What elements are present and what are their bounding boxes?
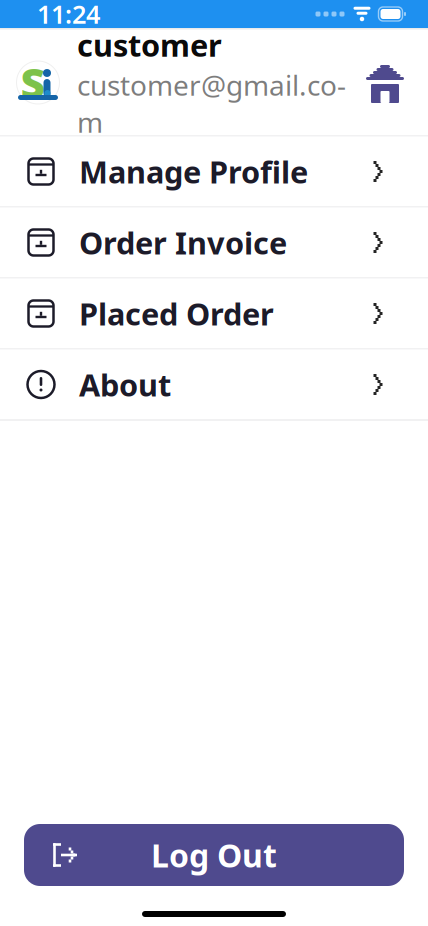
button[interactable]: About: [0, 349, 428, 419]
staticText: customer: [77, 24, 222, 65]
button[interactable]: Placed Order: [0, 278, 428, 348]
staticText: Manage Profile: [79, 151, 308, 192]
staticText: Log Out: [151, 834, 277, 876]
button[interactable]: Order Invoice: [0, 207, 428, 277]
button[interactable]: Log Out: [24, 824, 404, 886]
staticText: Placed Order: [79, 293, 274, 334]
staticText: 11:24: [37, 0, 100, 31]
button[interactable]: Manage Profile: [0, 136, 428, 206]
staticText: About: [79, 364, 171, 405]
staticText: Order Invoice: [79, 222, 287, 263]
staticText: customer@gmail.com: [77, 66, 346, 141]
button[interactable]: Home: [356, 53, 414, 111]
staticText: S: [20, 54, 45, 111]
